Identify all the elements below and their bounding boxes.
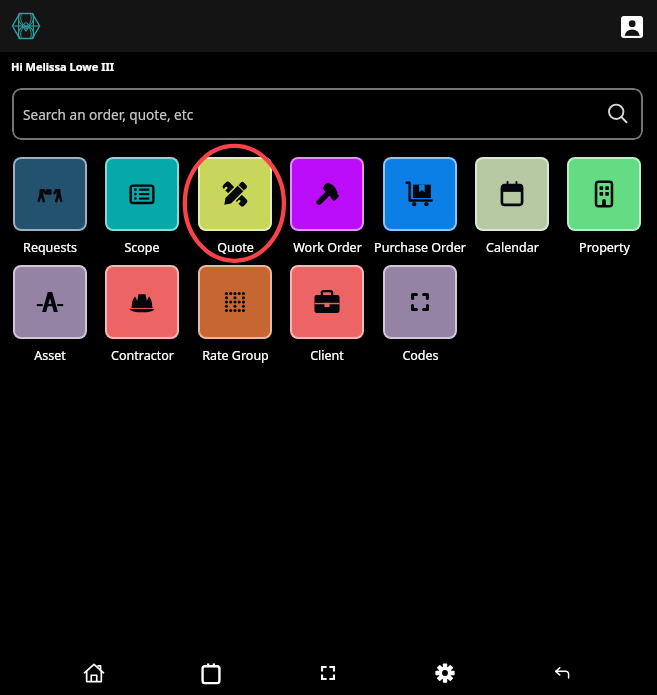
button[interactable]: App logo bbox=[8, 8, 44, 44]
button[interactable]: Quote bbox=[198, 157, 272, 231]
button[interactable]: Settings bbox=[386, 633, 503, 695]
staticText: Hi Melissa Lowe III bbox=[11, 59, 115, 74]
button[interactable]: Back bbox=[503, 633, 620, 695]
staticText: Property bbox=[579, 239, 630, 256]
staticText: Client bbox=[310, 347, 344, 364]
button[interactable]: Client bbox=[290, 265, 364, 339]
button[interactable]: Requests bbox=[13, 157, 87, 231]
button[interactable]: Asset bbox=[13, 265, 87, 339]
staticText: Purchase Order bbox=[374, 239, 466, 256]
button[interactable]: Rate Group bbox=[198, 265, 272, 339]
staticText: Quote bbox=[217, 239, 254, 256]
button[interactable]: Purchase Order bbox=[383, 157, 457, 231]
staticText: Calendar bbox=[486, 239, 539, 256]
button[interactable]: Contractor bbox=[105, 265, 179, 339]
button[interactable]: Work Order bbox=[290, 157, 364, 231]
staticText: Rate Group bbox=[202, 347, 269, 364]
staticText: Search an order, quote, etc bbox=[23, 105, 194, 124]
staticText: Requests bbox=[23, 239, 77, 256]
button[interactable]: Calendar bbox=[475, 157, 549, 231]
button[interactable]: Scope bbox=[105, 157, 179, 231]
staticText: Codes bbox=[402, 347, 439, 364]
button[interactable]: Account bbox=[621, 16, 643, 38]
button[interactable]: Scan bbox=[269, 633, 386, 695]
staticText: Work Order bbox=[293, 239, 362, 256]
button[interactable]: Search an order, quote, etc bbox=[12, 88, 643, 140]
staticText: Contractor bbox=[111, 347, 174, 364]
button[interactable]: Property bbox=[567, 157, 641, 231]
button[interactable]: Home bbox=[35, 633, 152, 695]
staticText: Asset bbox=[34, 347, 66, 364]
staticText: Scope bbox=[124, 239, 160, 256]
button[interactable]: Calendar bbox=[152, 633, 269, 695]
button[interactable]: Codes bbox=[383, 265, 457, 339]
